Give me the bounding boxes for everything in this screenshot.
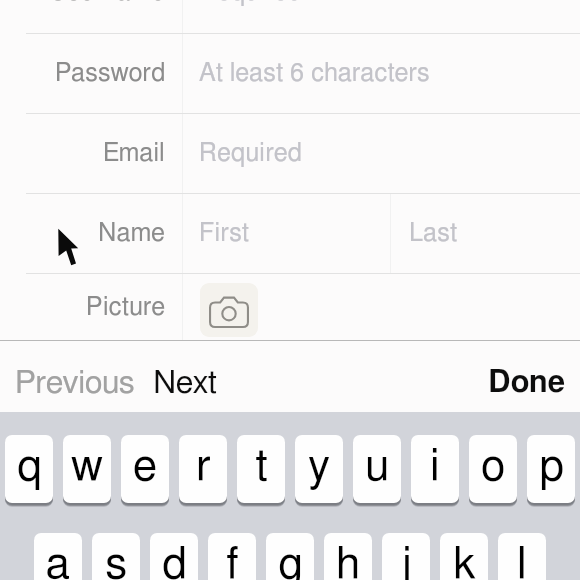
button[interactable]: a <box>34 533 82 580</box>
staticText: Last <box>409 221 458 246</box>
staticText: p <box>539 445 564 489</box>
staticText: e <box>133 445 157 489</box>
button[interactable]: Password <box>0 34 580 113</box>
staticText: j <box>401 543 412 580</box>
staticText: Name <box>98 221 166 246</box>
staticText: Required <box>199 141 303 166</box>
staticText: w <box>71 445 103 489</box>
staticText: a <box>46 543 70 580</box>
staticText: Password <box>55 61 166 86</box>
staticText: l <box>517 543 527 580</box>
button[interactable]: g <box>266 533 314 580</box>
staticText: Next <box>153 367 217 399</box>
button[interactable]: r <box>179 435 227 505</box>
staticText: g <box>278 543 303 580</box>
button[interactable]: Email <box>0 114 580 193</box>
button[interactable]: u <box>353 435 401 505</box>
button[interactable]: Take picture <box>200 283 258 337</box>
staticText: r <box>196 445 211 489</box>
staticText: h <box>336 543 360 580</box>
button[interactable]: j <box>382 533 430 580</box>
button[interactable]: w <box>63 435 111 505</box>
button[interactable]: t <box>237 435 285 505</box>
staticText: q <box>17 445 42 489</box>
staticText: d <box>162 543 187 580</box>
button[interactable]: d <box>150 533 198 580</box>
staticText: u <box>365 445 389 489</box>
staticText: k <box>453 543 476 580</box>
staticText: t <box>255 445 268 489</box>
button[interactable]: Next <box>145 341 227 412</box>
staticText: i <box>430 445 440 489</box>
button[interactable]: p <box>527 435 575 505</box>
staticText: o <box>481 445 505 489</box>
button[interactable]: k <box>440 533 488 580</box>
button[interactable]: o <box>469 435 517 505</box>
button[interactable]: f <box>208 533 256 580</box>
button[interactable]: y <box>295 435 343 505</box>
staticText: Email <box>103 141 166 166</box>
staticText: At least 6 characters <box>199 61 430 86</box>
staticText: Previous <box>15 367 135 399</box>
staticText: Picture <box>86 295 166 320</box>
button[interactable]: Last <box>391 194 580 273</box>
staticText: y <box>308 445 330 489</box>
button[interactable]: i <box>411 435 459 505</box>
button[interactable]: s <box>92 533 140 580</box>
button[interactable]: e <box>121 435 169 505</box>
button[interactable]: q <box>5 435 53 505</box>
staticText: f <box>226 543 239 580</box>
button[interactable]: Done <box>478 341 580 412</box>
staticText: First <box>199 221 250 246</box>
staticText: Required <box>199 0 303 5</box>
staticText: Username <box>49 0 166 5</box>
staticText: Done <box>488 367 566 398</box>
button[interactable]: First <box>183 194 390 273</box>
button[interactable]: Previous <box>0 341 145 412</box>
button[interactable]: h <box>324 533 372 580</box>
button[interactable]: l <box>498 533 546 580</box>
staticText: s <box>105 543 127 580</box>
